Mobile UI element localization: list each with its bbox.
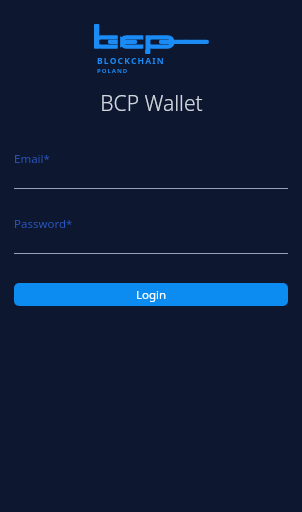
staticText: POLAND	[97, 67, 129, 75]
staticText: BLOCKCHAIN	[97, 55, 165, 67]
staticText: Login	[136, 287, 167, 303]
staticText: Password*	[14, 216, 73, 232]
button[interactable]: Login	[14, 283, 288, 306]
staticText: Email*	[14, 151, 50, 167]
staticText: BCP Wallet	[100, 89, 203, 118]
